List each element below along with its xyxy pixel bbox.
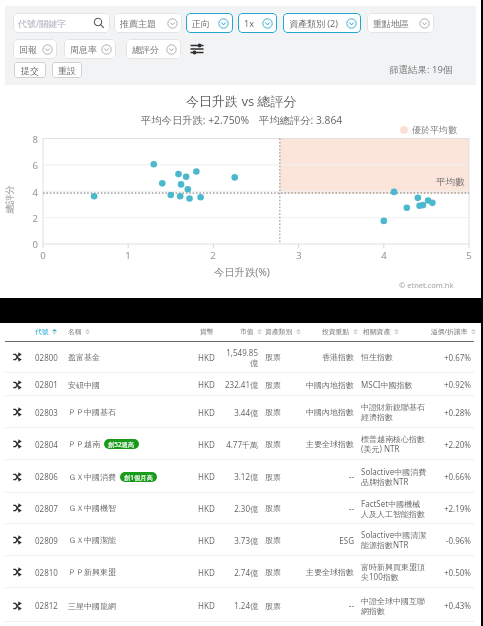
button[interactable]: Compare [0, 341, 483, 373]
button[interactable]: 投資重點 [322, 327, 359, 336]
button[interactable]: 溢價/折讓率 [431, 327, 477, 336]
other: Compare [13, 601, 23, 611]
staticText: 代號/關鍵字 [18, 17, 67, 29]
staticText: 創1個月高 [124, 473, 153, 482]
staticText: ＧＸ中國機智 [68, 503, 116, 513]
button[interactable]: 正向 [186, 13, 233, 33]
button[interactable]: Compare [0, 428, 483, 460]
staticText: 3 [293, 249, 305, 262]
staticText: 232.41億 [222, 379, 258, 390]
button[interactable]: 總評分 [126, 39, 181, 59]
staticText: 恒生指數 [361, 352, 427, 362]
button[interactable]: Compare [0, 396, 483, 428]
staticText: 重設 [58, 65, 76, 76]
staticText: ＰＰ中國基石 [68, 407, 116, 417]
staticText: 總評分 [3, 184, 15, 213]
staticText: ESG [296, 535, 354, 546]
staticText: 正向 [192, 18, 210, 29]
staticText: 周息率 [70, 44, 97, 55]
staticText: 02809 [35, 535, 60, 546]
button[interactable]: Compare [0, 524, 483, 556]
staticText: FactSet中國機械人及人工智能指數 [361, 498, 427, 519]
staticText: 5 [463, 249, 475, 262]
staticText: HKD [198, 600, 218, 611]
other: Compare [13, 472, 23, 482]
staticText: 平均數 [436, 176, 465, 188]
staticText: 股票 [265, 472, 283, 482]
staticText: +0.43% [411, 600, 471, 611]
staticText: 3.44億 [222, 407, 258, 418]
staticText: 篩選結果: 19個 [389, 63, 453, 76]
staticText: -- [296, 600, 354, 611]
button[interactable]: 代號 [35, 327, 58, 336]
button[interactable]: 推薦主題 [114, 13, 182, 33]
staticText: 主要全球指數 [296, 567, 354, 577]
button[interactable]: 重點地區 [367, 13, 434, 33]
staticText: 安碩中國 [68, 380, 100, 390]
staticText: 平均今日升跌: +2.750% [141, 113, 249, 127]
button[interactable]: 代號/關鍵字 [13, 13, 110, 33]
staticText: +0.92% [411, 379, 471, 390]
staticText: 4 [26, 186, 38, 199]
button[interactable]: 重設 [52, 62, 82, 78]
staticText: 三星中國龍網 [68, 601, 116, 611]
button[interactable]: 貨幣 [200, 327, 214, 336]
staticText: 投資重點 [322, 327, 350, 336]
staticText: 4 [378, 249, 390, 262]
staticText: 02800 [35, 352, 60, 363]
staticText: 股票 [265, 352, 283, 362]
staticText: 02804 [35, 439, 60, 450]
staticText: -0.96% [411, 535, 471, 546]
staticText: 2 [207, 249, 219, 262]
staticText: 資產類別 (2) [289, 17, 338, 29]
staticText: 貨幣 [200, 327, 214, 336]
staticText: -- [296, 471, 354, 482]
button[interactable]: More filters [189, 41, 205, 57]
button[interactable]: Compare [0, 589, 483, 622]
staticText: 1.24億 [222, 600, 258, 611]
staticText: 4.77千萬 [222, 439, 258, 450]
other: Compare [13, 380, 23, 390]
staticText: Solactive中國消費品牌指數NTR [361, 466, 427, 488]
staticText: ＰＰ越南 [68, 439, 100, 449]
staticText: 8 [26, 133, 38, 146]
staticText: ＧＸ中國消費 [68, 472, 116, 482]
button[interactable]: 周息率 [64, 39, 116, 59]
staticText: 平均總評分: 3.864 [259, 113, 343, 127]
other: Compare [13, 352, 23, 362]
staticText: 股票 [265, 567, 283, 577]
button[interactable]: 市值 [240, 327, 263, 336]
staticText: 富時新興買東盟頂尖100指數 [361, 562, 427, 583]
button[interactable]: 回報 [13, 39, 57, 59]
button[interactable]: 相關資產 [363, 327, 400, 336]
staticText: +2.20% [411, 439, 471, 450]
button[interactable]: Compare [0, 492, 483, 524]
staticText: 股票 [265, 380, 283, 390]
staticText: +0.66% [411, 471, 471, 482]
button[interactable]: 1x [238, 13, 277, 33]
staticText: 名稱 [68, 327, 82, 336]
staticText: 香港指數 [296, 352, 354, 362]
button[interactable]: 資產類別 (2) [283, 13, 361, 33]
staticText: 股票 [265, 407, 283, 417]
staticText: 股票 [265, 503, 283, 513]
staticText: +0.50% [411, 567, 471, 578]
other: Search [93, 17, 105, 29]
staticText: +0.28% [411, 407, 471, 418]
staticText: HKD [198, 535, 218, 546]
staticText: 2 [26, 212, 38, 225]
staticText: 溢價/折讓率 [431, 327, 468, 336]
button[interactable]: 資產類別 [265, 327, 302, 336]
staticText: ＰＰ新興東盟 [68, 567, 116, 577]
staticText: 今日升跌 vs 總評分 [186, 92, 297, 110]
staticText: HKD [198, 407, 218, 418]
staticText: -- [296, 503, 354, 514]
button[interactable]: 名稱 [68, 327, 91, 336]
staticText: 02803 [35, 407, 60, 418]
button[interactable]: Compare [0, 373, 483, 396]
button[interactable]: 提交 [14, 62, 46, 78]
other: Compare [13, 535, 23, 545]
other: Compare [13, 567, 23, 577]
button[interactable]: Compare [0, 556, 483, 588]
button[interactable]: Compare [0, 460, 483, 493]
